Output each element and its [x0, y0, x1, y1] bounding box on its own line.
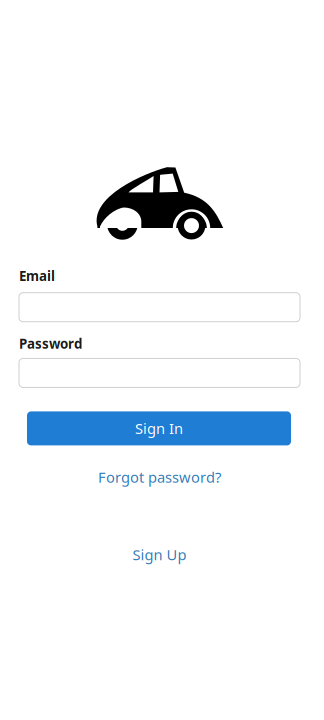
button[interactable]: Forgot password?	[19, 467, 300, 487]
staticText: Password	[19, 335, 82, 352]
staticText: Forgot password?	[98, 467, 221, 487]
button[interactable]: Sign Up	[19, 545, 300, 564]
button[interactable]: Sign In	[27, 411, 291, 445]
staticText: Email	[19, 267, 55, 285]
staticText: Sign In	[135, 419, 183, 438]
staticText: Sign Up	[132, 545, 186, 564]
